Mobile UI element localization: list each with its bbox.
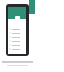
button[interactable]	[8, 43, 26, 47]
button[interactable]	[8, 35, 26, 39]
button[interactable]	[8, 31, 26, 35]
button[interactable]	[8, 47, 26, 51]
button[interactable]	[8, 39, 26, 43]
button[interactable]	[15, 16, 20, 21]
button[interactable]	[8, 27, 26, 31]
